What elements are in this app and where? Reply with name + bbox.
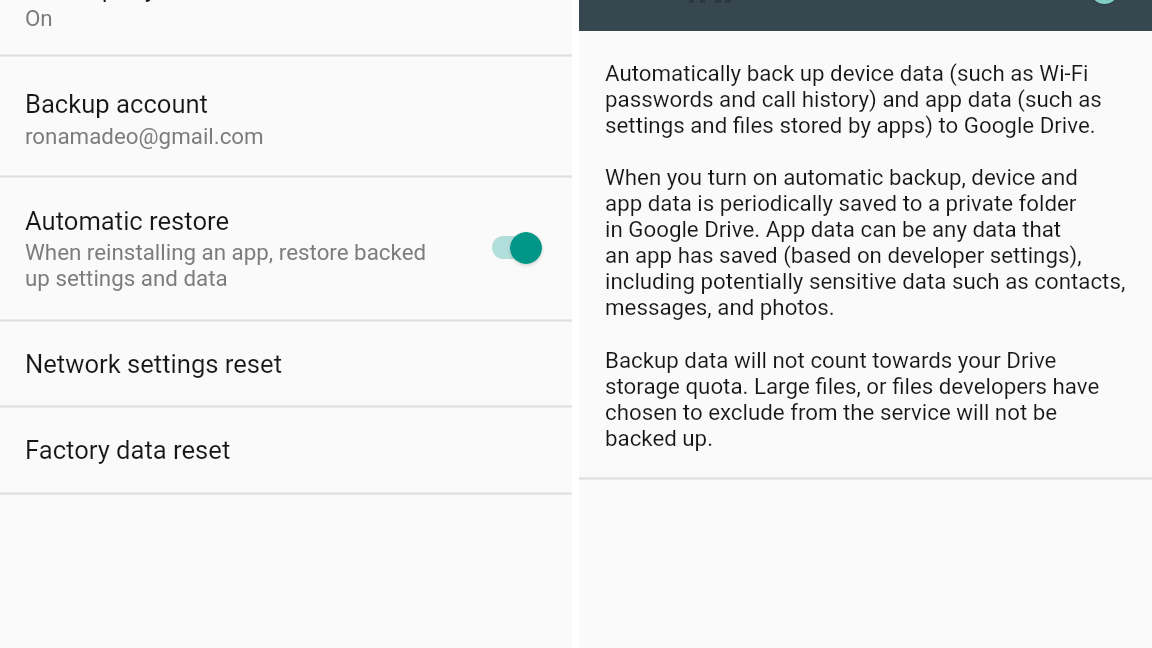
button[interactable]: Backup account [0,56,572,176]
staticText: ronamadeo@gmail.com [25,123,264,149]
staticText: Automatic restore [25,206,230,236]
staticText: When reinstalling an app, restore backed… [25,239,427,291]
staticText: Backup account [25,89,208,119]
staticText: Back up my data [25,0,214,3]
button[interactable]: Back up my data [0,0,572,55]
staticText: Network settings reset [25,349,282,379]
staticText: On [25,5,53,28]
button[interactable]: Network settings reset [0,321,572,406]
button[interactable]: Automatic restore [0,177,572,320]
button[interactable]: Factory data reset [0,407,572,493]
staticText: When you turn on automatic backup, devic… [605,165,1126,321]
staticText: Automatically back up device data (such … [605,61,1102,139]
button[interactable]: Account [1089,0,1120,5]
staticText: Factory data reset [25,435,231,465]
staticText: Backup data will not count towards your … [605,348,1100,452]
